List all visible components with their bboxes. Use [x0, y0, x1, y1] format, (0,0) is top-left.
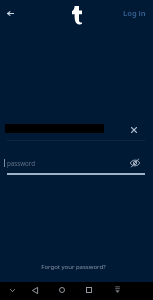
button[interactable]: Show password: [126, 154, 143, 171]
staticText: password: [7, 159, 36, 167]
staticText: Log in: [123, 8, 146, 18]
button[interactable]: Hide keyboard: [4, 283, 20, 299]
button[interactable]: Back: [27, 283, 43, 299]
button[interactable]: Clear text: [125, 121, 142, 138]
button[interactable]: Recent apps: [81, 283, 97, 299]
button[interactable]: Home: [54, 283, 70, 299]
staticText: Forgot your password?: [41, 263, 106, 271]
button[interactable]: Forgot your password?: [35, 259, 112, 275]
button[interactable]: Switch keyboard: [109, 283, 125, 299]
button[interactable]: Back: [2, 5, 18, 21]
button[interactable]: Log in: [120, 4, 149, 22]
